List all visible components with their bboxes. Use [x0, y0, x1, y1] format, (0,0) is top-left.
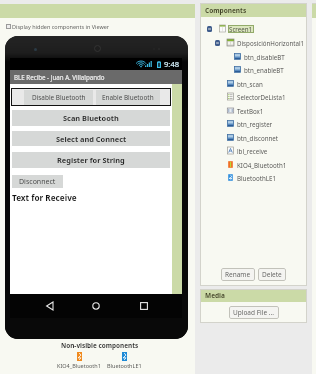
- button[interactable]: DisposiciónHorizontal1: [200, 37, 307, 48]
- staticText: BLE Recibe - Juan A. Villalpando: [14, 73, 105, 81]
- button[interactable]: Delete: [258, 268, 286, 281]
- staticText: Register for String: [57, 155, 125, 165]
- staticText: Non-visible components: [61, 341, 139, 350]
- button[interactable]: Home: [87, 297, 105, 315]
- button[interactable]: Recents: [135, 297, 153, 315]
- staticText: KIO4_Bluetooth1: [57, 362, 101, 369]
- staticText: btn_scan: [237, 80, 263, 88]
- staticText: Upload File ...: [233, 308, 275, 317]
- staticText: btn_disconnet: [237, 134, 279, 142]
- button[interactable]: btn_scan: [200, 78, 307, 89]
- button[interactable]: BluetoothLE1: [200, 172, 307, 183]
- staticText: Disconnect: [19, 177, 56, 187]
- staticText: Screen1: [229, 25, 253, 33]
- staticText: Text for Receive: [12, 192, 77, 203]
- staticText: 9:48: [164, 59, 180, 69]
- button[interactable]: Disconnect: [12, 175, 63, 188]
- button[interactable]: Disable Bluetooth: [24, 90, 93, 105]
- staticText: Components: [205, 6, 247, 15]
- staticText: SelectorDeLista1: [237, 93, 286, 101]
- button[interactable]: KIO4_Bluetooth1: [200, 159, 307, 170]
- staticText: TextBox1: [237, 107, 264, 115]
- button[interactable]: Enable Bluetooth: [96, 90, 160, 105]
- staticText: BluetoothLE1: [107, 362, 142, 369]
- button[interactable]: lbl_receive: [200, 145, 307, 156]
- staticText: Enable Bluetooth: [102, 93, 154, 102]
- staticText: lbl_receive: [237, 147, 268, 155]
- staticText: DisposiciónHorizontal1: [237, 39, 305, 47]
- staticText: KIO4_Bluetooth1: [237, 161, 287, 169]
- button[interactable]: btn_register: [200, 118, 307, 129]
- button[interactable]: Select and Connect: [12, 131, 170, 146]
- staticText: Scan Bluetooth: [63, 113, 119, 123]
- staticText: BluetoothLE1: [237, 174, 276, 182]
- staticText: Media: [205, 291, 225, 300]
- staticText: btn_disableBT: [244, 53, 285, 61]
- staticText: Rename: [225, 270, 251, 279]
- button[interactable]: Register for String: [12, 152, 170, 168]
- button[interactable]: TextBox1: [200, 105, 307, 116]
- staticText: Disable Bluetooth: [32, 93, 86, 102]
- button[interactable]: SelectorDeLista1: [200, 91, 307, 102]
- button[interactable]: btn_disableBT: [200, 51, 307, 62]
- staticText: btn_enableBT: [244, 66, 284, 74]
- button[interactable]: Scan Bluetooth: [12, 110, 170, 126]
- button[interactable]: Screen1: [200, 23, 307, 34]
- button[interactable]: Back: [40, 297, 58, 315]
- button[interactable]: Upload File ...: [229, 306, 279, 319]
- button[interactable]: Rename: [221, 268, 255, 281]
- staticText: Display hidden components in Viewer: [12, 23, 110, 30]
- staticText: Delete: [262, 270, 282, 279]
- staticText: btn_register: [237, 120, 273, 128]
- button[interactable]: btn_disconnet: [200, 132, 307, 143]
- staticText: Select and Connect: [56, 134, 127, 144]
- button[interactable]: Display hidden components in Viewer: [6, 23, 110, 30]
- button[interactable]: btn_enableBT: [200, 64, 307, 75]
